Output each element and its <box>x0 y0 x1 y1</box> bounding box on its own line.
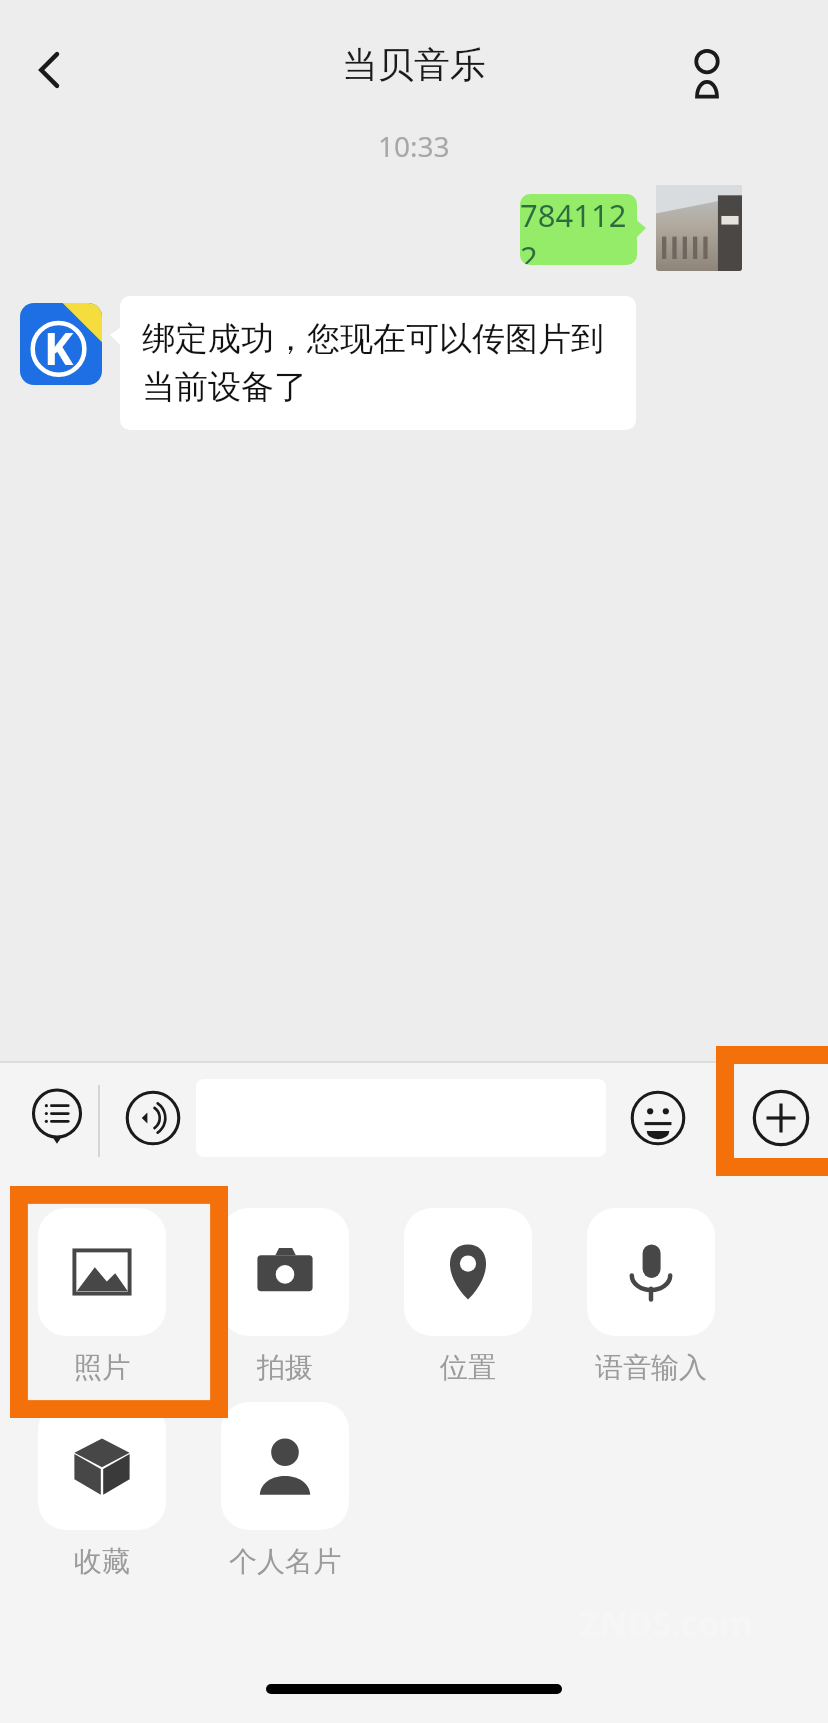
button[interactable]: Back <box>14 34 86 106</box>
button[interactable]: 收藏 <box>38 1402 166 1579</box>
button[interactable]: 7841122 <box>520 194 637 265</box>
button[interactable]: More options <box>710 1075 796 1161</box>
button[interactable]: 照片 <box>38 1208 166 1385</box>
staticText: 10:33 <box>378 127 450 165</box>
button[interactable]: 个人名片 <box>221 1402 349 1579</box>
staticText: 收藏 <box>38 1544 166 1579</box>
button[interactable]: 语音输入 <box>587 1208 715 1385</box>
staticText: 绑定成功，您现在可以传图片到当前设备了 <box>142 318 614 408</box>
button[interactable]: Voice message <box>110 1075 196 1161</box>
button[interactable]: 绑定成功，您现在可以传图片到当前设备了 <box>120 296 636 430</box>
staticText: 照片 <box>38 1350 166 1385</box>
button[interactable]: Menu <box>12 1073 102 1163</box>
button[interactable]: 拍摄 <box>221 1208 349 1385</box>
button[interactable]: Emoji <box>615 1075 701 1161</box>
staticText: 语音输入 <box>587 1350 715 1385</box>
button[interactable]: Contact profile <box>664 30 750 116</box>
button[interactable]: K <box>20 303 102 385</box>
staticText: 当贝音乐 <box>342 42 486 87</box>
button[interactable]: 位置 <box>404 1208 532 1385</box>
button[interactable] <box>656 185 742 271</box>
staticText: 7841122 <box>520 194 637 265</box>
staticText: 个人名片 <box>221 1544 349 1579</box>
staticText: 拍摄 <box>221 1350 349 1385</box>
staticText: 位置 <box>404 1350 532 1385</box>
staticText: K <box>44 318 74 378</box>
